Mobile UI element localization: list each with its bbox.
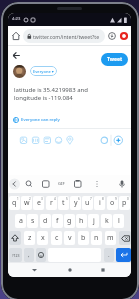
button[interactable] <box>11 31 21 41</box>
staticText: d <box>43 216 48 226</box>
staticText: l <box>118 216 120 226</box>
staticText: t <box>62 198 65 208</box>
button[interactable]: u <box>82 196 93 210</box>
staticText: ?123 <box>12 253 20 258</box>
button[interactable]: k <box>101 214 112 228</box>
staticText: f <box>56 216 59 226</box>
button[interactable]: ?123 <box>9 248 22 262</box>
button[interactable]: c <box>51 231 62 245</box>
staticText: v <box>68 233 72 243</box>
button[interactable]: g <box>64 214 75 228</box>
button[interactable] <box>108 32 116 40</box>
button[interactable]: a <box>15 214 26 228</box>
staticText: z <box>28 233 32 243</box>
button[interactable] <box>30 266 39 274</box>
staticText: 4:23 <box>12 16 21 22</box>
staticText: 1 <box>17 197 19 201</box>
staticText: 2 <box>29 197 31 201</box>
staticText: GIF <box>58 181 65 187</box>
staticText: y <box>74 198 78 208</box>
button[interactable]: w <box>21 196 32 210</box>
staticText: 3 <box>41 197 43 201</box>
staticText: c <box>55 233 59 243</box>
button[interactable]: q <box>9 196 20 210</box>
staticText: s <box>31 216 35 226</box>
staticText: n <box>94 233 99 243</box>
staticText: k <box>105 216 109 226</box>
staticText: p <box>122 198 127 208</box>
button[interactable]: z <box>24 231 35 245</box>
button[interactable]: Tweet <box>101 53 128 66</box>
button[interactable] <box>12 51 21 60</box>
staticText: h <box>79 216 84 226</box>
staticText: Tweet <box>107 56 123 63</box>
staticText: j <box>93 216 95 226</box>
button[interactable]: o <box>107 196 118 210</box>
button[interactable] <box>66 266 74 274</box>
button[interactable]: j <box>88 214 99 228</box>
button[interactable]: p <box>119 196 130 210</box>
button[interactable]: x <box>37 231 48 245</box>
button[interactable] <box>99 266 107 274</box>
staticText: Everyone ▾ <box>33 69 54 74</box>
button[interactable]: , <box>24 248 34 262</box>
staticText: g <box>67 216 72 226</box>
staticText: e <box>37 198 41 208</box>
button[interactable]: v <box>64 231 75 245</box>
staticText: latitude is 35.4219983 and longitude is … <box>14 86 88 102</box>
button[interactable] <box>9 231 21 245</box>
button[interactable] <box>119 231 131 245</box>
button[interactable]: . <box>104 248 114 262</box>
button[interactable]: l <box>113 214 124 228</box>
button[interactable]: m <box>105 231 116 245</box>
button[interactable]: twitter.com/intent/tweet?te <box>23 29 105 43</box>
button[interactable]: Everyone can reply <box>13 116 73 124</box>
button[interactable]: t <box>58 196 69 210</box>
staticText: . <box>108 251 110 259</box>
staticText: a <box>19 216 23 226</box>
staticText: 0 <box>127 197 129 201</box>
button[interactable]: r <box>46 196 57 210</box>
button[interactable] <box>36 248 46 262</box>
staticText: Everyone can reply <box>21 116 60 122</box>
button[interactable]: n <box>91 231 102 245</box>
staticText: 8 <box>102 197 104 201</box>
button[interactable]: b <box>78 231 89 245</box>
staticText: m <box>107 233 114 243</box>
button[interactable]: h <box>76 214 87 228</box>
staticText: 6 <box>78 197 80 201</box>
staticText: 9 <box>115 197 117 201</box>
button[interactable]: s <box>27 214 38 228</box>
button[interactable]: Everyone ▾ <box>30 66 57 76</box>
staticText: x <box>41 233 45 243</box>
staticText: u <box>85 198 90 208</box>
staticText: , <box>28 251 30 259</box>
staticText: i <box>99 198 101 208</box>
staticText: o <box>110 198 115 208</box>
staticText: 5 <box>66 197 68 201</box>
staticText: 7 <box>90 197 92 201</box>
staticText: w <box>24 198 30 208</box>
button[interactable]: y <box>70 196 81 210</box>
button[interactable]: d <box>40 214 51 228</box>
staticText: r <box>50 198 53 208</box>
button[interactable] <box>116 248 131 262</box>
button[interactable]: i <box>94 196 105 210</box>
button[interactable]: f <box>52 214 63 228</box>
staticText: q <box>12 198 17 208</box>
button[interactable] <box>120 32 128 40</box>
staticText: twitter.com/intent/tweet?te <box>33 33 100 40</box>
button[interactable]: e <box>33 196 44 210</box>
staticText: 4 <box>54 197 56 201</box>
staticText: b <box>81 233 86 243</box>
